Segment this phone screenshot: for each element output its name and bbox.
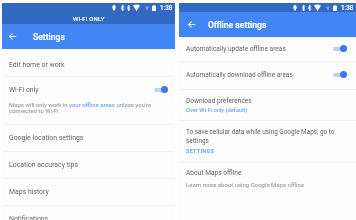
button[interactable]: Location accuracy tips (2, 151, 175, 178)
button[interactable]: Back (5, 29, 20, 44)
staticText: Settings (33, 32, 65, 42)
staticText: Edit home or work (9, 61, 65, 69)
button[interactable]: Notifications (2, 205, 175, 220)
staticText: Notifications (9, 215, 49, 220)
staticText: Location accuracy tips (9, 161, 79, 169)
button[interactable]: Toggle (333, 45, 347, 52)
button[interactable]: Toggle (154, 86, 168, 93)
staticText: Offline settings (208, 20, 267, 30)
staticText: To save cellular data while using Google… (186, 128, 346, 144)
staticText: Download preferences (186, 97, 252, 105)
staticText: Wi-Fi only (9, 86, 154, 94)
button[interactable]: Edit home or work (2, 50, 175, 77)
staticText: Automatically download offline areas (186, 71, 333, 79)
staticText: Automatically update offline areas (186, 45, 333, 53)
staticText: Over Wi-Fi only (default) (186, 107, 248, 114)
staticText: SETTINGS (186, 148, 215, 155)
button[interactable]: Back (184, 17, 199, 32)
staticText: Learn more about using Google Maps offli… (186, 181, 305, 188)
staticText: Maps history (9, 188, 49, 196)
button[interactable]: Maps history (2, 178, 175, 205)
button[interactable]: Automatically update offline areas (179, 36, 356, 61)
button[interactable]: Download preferences (179, 89, 356, 120)
staticText: WI-FI ONLY (73, 15, 105, 22)
button[interactable]: Wi-Fi only (2, 76, 175, 124)
button[interactable]: Automatically download offline areas (179, 61, 356, 88)
button[interactable]: Google location settings (2, 124, 175, 151)
staticText: 1:38 (160, 4, 173, 12)
staticText: Google location settings (9, 134, 84, 142)
staticText: About Maps offline (186, 169, 242, 177)
button[interactable]: SETTINGS (186, 148, 215, 155)
staticText: Maps will only work in your offline area… (9, 101, 171, 114)
staticText: 1:38 (341, 4, 354, 12)
button[interactable]: About Maps offline (179, 162, 356, 188)
button[interactable]: Toggle (333, 71, 347, 78)
